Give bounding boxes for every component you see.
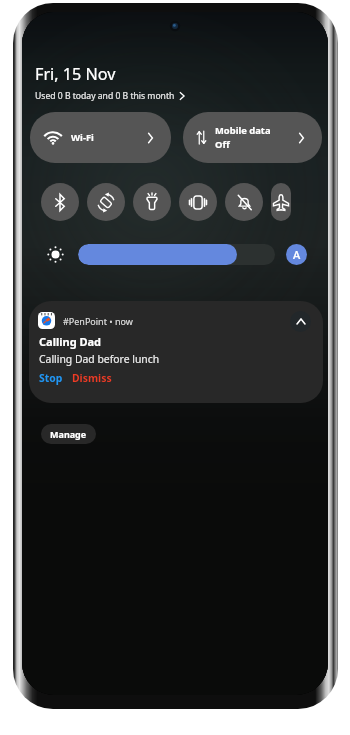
staticText: Wi-Fi	[71, 131, 94, 144]
staticText: Mobile data	[215, 124, 271, 137]
staticText: Manage	[50, 428, 87, 440]
button[interactable]: Vibrate	[179, 183, 217, 221]
staticText: #PenPoint • now	[63, 315, 133, 327]
button[interactable]: Mute notifications	[225, 183, 263, 221]
button[interactable]: Mobile data	[183, 112, 322, 163]
button[interactable]: Bluetooth	[41, 183, 79, 221]
button[interactable]: Airplane mode	[271, 183, 291, 221]
button[interactable]: Wi-Fi	[30, 112, 171, 163]
button[interactable]: Flashlight	[133, 183, 171, 221]
button[interactable]: Stop	[39, 371, 63, 385]
staticText: Calling Dad	[39, 334, 102, 349]
staticText: Used 0 B today and 0 B this month	[35, 90, 175, 102]
button[interactable]: Manage	[41, 424, 96, 444]
button[interactable]: Auto rotate	[87, 183, 125, 221]
button[interactable]: Dismiss	[72, 371, 112, 385]
staticText: Off	[215, 138, 230, 151]
button[interactable]	[78, 244, 275, 265]
staticText: A	[293, 247, 301, 262]
staticText: Fri, 15 Nov	[35, 63, 116, 85]
button[interactable]: Used 0 B today and 0 B this month	[34, 89, 186, 103]
staticText: Calling Dad before lunch	[39, 352, 160, 366]
button[interactable]: #PenPoint • now	[29, 301, 323, 403]
button[interactable]: Collapse	[290, 311, 311, 332]
button[interactable]: A	[286, 244, 307, 265]
